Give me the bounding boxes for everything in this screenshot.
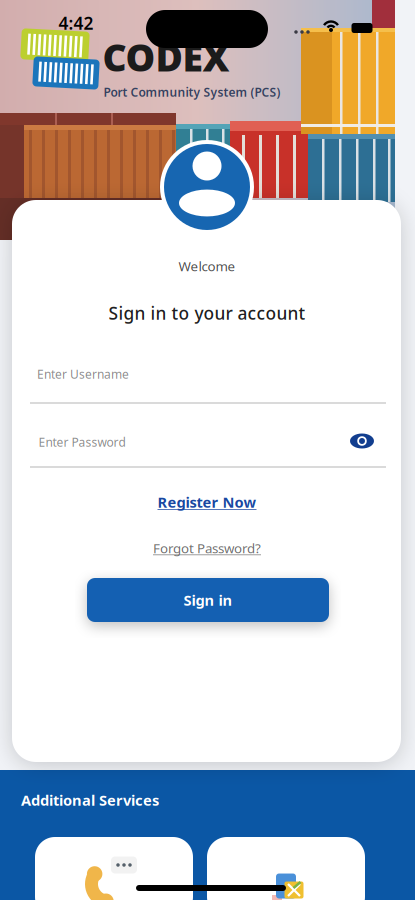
staticText: Sign in to your account bbox=[108, 301, 305, 324]
button[interactable]: Show password bbox=[349, 431, 375, 451]
staticText: Port Community System (PCS) bbox=[103, 84, 280, 100]
staticText: Additional Services bbox=[21, 790, 159, 810]
button[interactable]: Export documents bbox=[207, 837, 365, 900]
staticText: Enter Password bbox=[38, 434, 125, 450]
staticText: Register Now bbox=[157, 492, 256, 512]
button[interactable]: Forgot Password? bbox=[153, 539, 261, 557]
staticText: 4:42 bbox=[58, 11, 93, 34]
staticText: Forgot Password? bbox=[153, 539, 261, 557]
button[interactable]: Register Now bbox=[157, 492, 256, 512]
staticText: Welcome bbox=[178, 257, 235, 275]
button[interactable]: Contact support bbox=[35, 837, 193, 900]
staticText: Sign in bbox=[183, 590, 232, 610]
staticText: Enter Username bbox=[37, 366, 129, 382]
staticText: CODEX bbox=[102, 32, 229, 82]
button[interactable]: Sign in bbox=[87, 578, 329, 622]
